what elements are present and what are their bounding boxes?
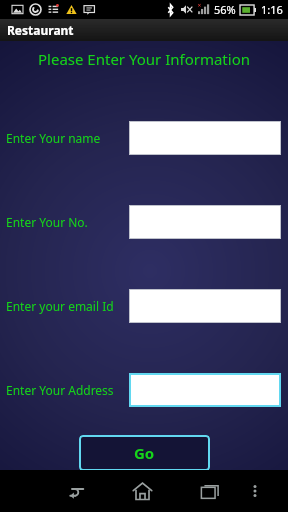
- staticText: 1:16: [261, 2, 283, 17]
- staticText: Please Enter Your Information: [38, 49, 250, 69]
- button[interactable]: Go: [79, 435, 210, 471]
- button[interactable]: More options: [240, 476, 270, 506]
- staticText: Enter your email Id: [6, 298, 114, 314]
- button[interactable]: Recent apps: [188, 470, 232, 512]
- button[interactable]: Home: [120, 470, 164, 512]
- staticText: Enter Your Address: [6, 382, 114, 398]
- button[interactable]: [129, 289, 281, 323]
- button[interactable]: [129, 205, 281, 239]
- button[interactable]: Back: [52, 470, 96, 512]
- staticText: 56%: [214, 2, 236, 17]
- button[interactable]: [129, 121, 281, 155]
- staticText: Enter Your No.: [6, 214, 88, 230]
- staticText: Enter Your name: [6, 130, 101, 146]
- staticText: Restaurant: [7, 22, 74, 38]
- button[interactable]: [129, 373, 281, 407]
- staticText: Go: [134, 443, 155, 463]
